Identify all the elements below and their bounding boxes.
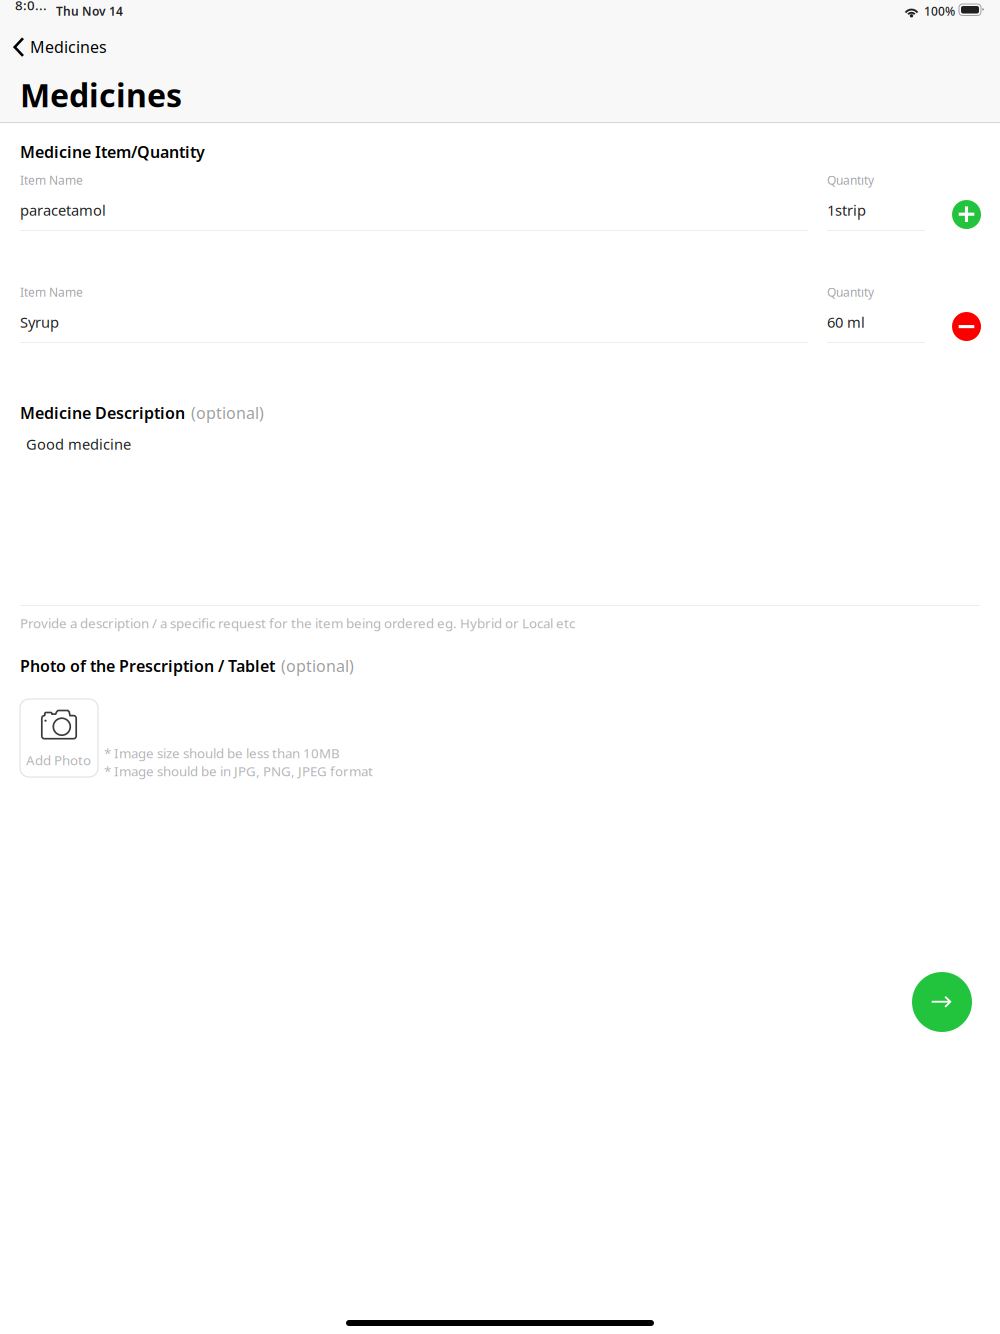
button[interactable]: Remove medicine item <box>952 312 981 341</box>
staticText: paracetamol <box>20 200 106 220</box>
staticText: Provide a description / a specific reque… <box>20 614 575 632</box>
staticText: 1strip <box>827 200 866 220</box>
staticText: Photo of the Prescription / Tablet <box>20 655 275 677</box>
staticText: Quantity <box>827 284 874 300</box>
staticText: Item Name <box>20 284 83 300</box>
staticText: Medicines <box>30 36 107 58</box>
button[interactable]: Add Photo <box>20 699 98 777</box>
staticText: (optional) <box>191 402 264 424</box>
staticText: 100% <box>924 3 955 19</box>
button[interactable]: Add medicine item <box>952 200 981 229</box>
staticText: Thu Nov 14 <box>56 3 123 19</box>
staticText: Syrup <box>20 312 59 332</box>
staticText: 8:0... <box>15 0 47 14</box>
staticText: Good medicine <box>26 434 131 454</box>
button[interactable]: Quantity <box>827 286 925 343</box>
staticText: 60 ml <box>827 312 865 332</box>
staticText: (optional) <box>281 655 354 677</box>
staticText: Add Photo <box>26 751 91 769</box>
staticText: Medicine Description <box>20 402 185 424</box>
button[interactable]: Next <box>912 972 972 1032</box>
staticText: * Image size should be less than 10MB <box>104 744 340 762</box>
staticText: * Image should be in JPG, PNG, JPEG form… <box>104 762 373 780</box>
button[interactable]: Medicines <box>5 31 115 64</box>
staticText: Item Name <box>20 172 83 188</box>
button[interactable]: Quantity <box>827 174 925 231</box>
button[interactable]: Item Name <box>20 174 808 231</box>
staticText: Medicine Item/Quantity <box>20 141 205 163</box>
staticText: Quantity <box>827 172 874 188</box>
button[interactable]: Item Name <box>20 286 808 343</box>
staticText: Medicines <box>20 73 182 117</box>
